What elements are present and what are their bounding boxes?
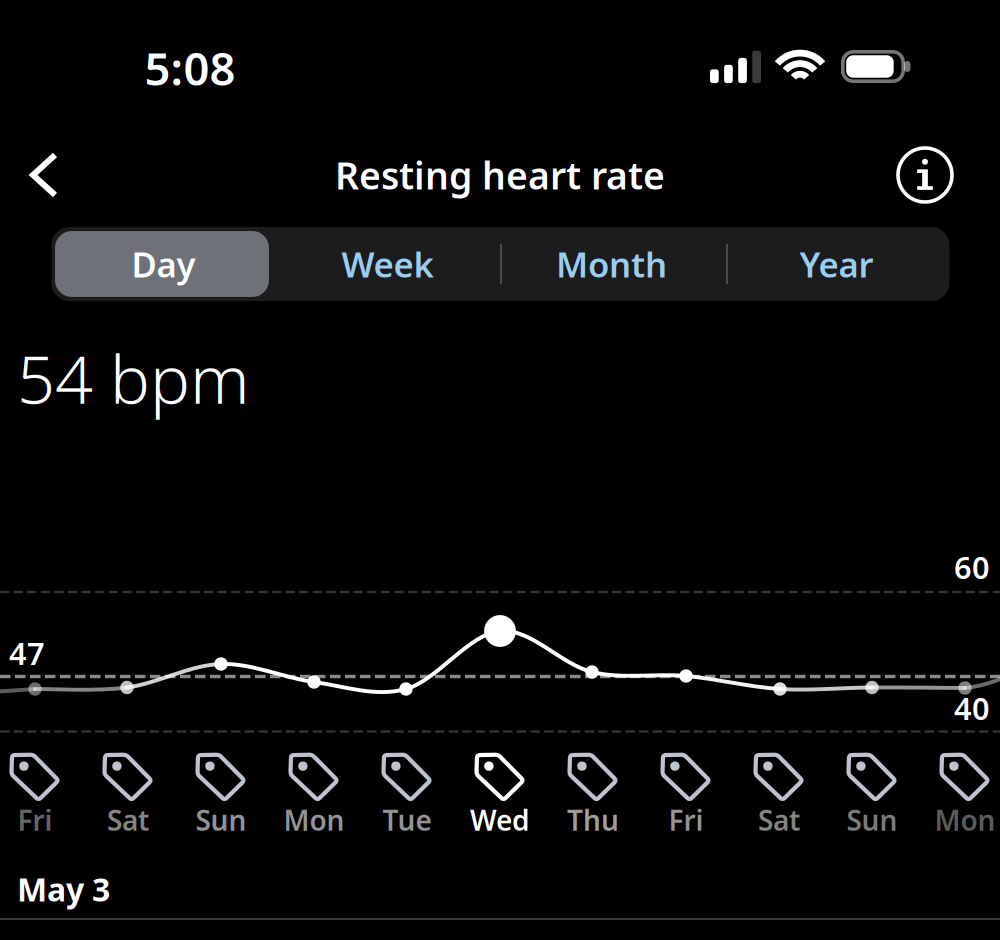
button[interactable]: Thu <box>546 753 639 841</box>
button[interactable]: Year <box>723 227 949 301</box>
staticText: Mon <box>934 801 995 839</box>
staticText: Tue <box>382 801 431 839</box>
staticText: Sun <box>195 801 246 839</box>
staticText: Month <box>556 241 667 287</box>
staticText: 60 <box>954 547 990 587</box>
button[interactable]: Day <box>51 227 275 301</box>
staticText: 54 bpm <box>17 334 250 422</box>
button[interactable]: Month <box>499 227 723 301</box>
staticText: May 3 <box>17 868 110 910</box>
staticText: Mon <box>283 801 344 839</box>
staticText: Day <box>131 241 195 287</box>
button[interactable]: Mon <box>267 753 360 841</box>
staticText: Sun <box>846 801 897 839</box>
staticText: Sat <box>758 801 800 839</box>
button[interactable]: Mon <box>918 753 1000 841</box>
staticText: Fri <box>17 801 52 839</box>
button[interactable]: Tue <box>360 753 453 841</box>
button[interactable]: Back <box>5 130 83 220</box>
staticText: 47 <box>9 633 45 673</box>
button[interactable]: Week <box>275 227 499 301</box>
button[interactable]: Sun <box>825 753 918 841</box>
staticText: Year <box>799 241 873 287</box>
button[interactable]: Sat <box>732 753 825 841</box>
staticText: 5:08 <box>144 38 235 98</box>
button[interactable]: Wed <box>453 753 546 841</box>
staticText: Wed <box>470 801 530 839</box>
staticText: Resting heart rate <box>335 150 665 200</box>
staticText: 40 <box>954 688 990 728</box>
staticText: Sat <box>107 801 149 839</box>
button[interactable]: Sat <box>81 753 174 841</box>
button[interactable]: Fri <box>0 753 81 841</box>
staticText: Week <box>341 241 433 287</box>
button[interactable]: Information <box>880 130 970 220</box>
staticText: Fri <box>668 801 703 839</box>
button[interactable]: Fri <box>639 753 732 841</box>
button[interactable]: Sun <box>174 753 267 841</box>
staticText: Thu <box>567 801 619 839</box>
